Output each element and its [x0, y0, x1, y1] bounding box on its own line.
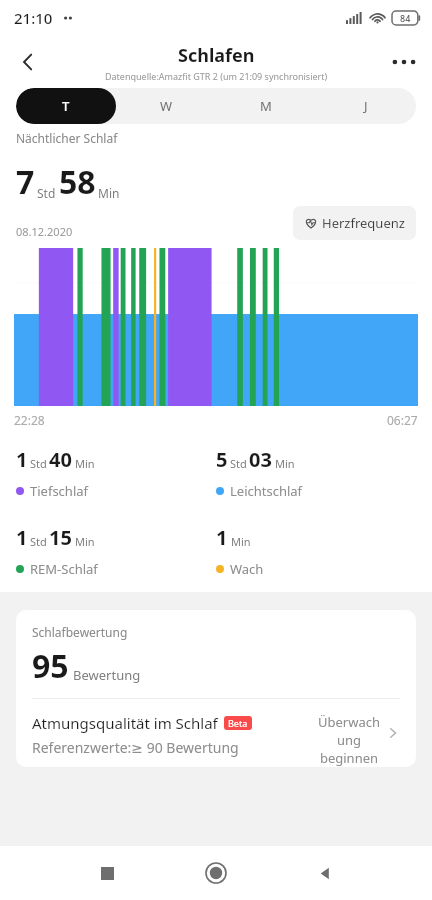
staticText: Atmungsqualität im Schlaf — [32, 713, 218, 733]
staticText: 40 — [49, 446, 72, 473]
staticText: 84 — [400, 12, 411, 24]
staticText: 58 — [59, 160, 96, 204]
staticText: Schlafen — [178, 43, 255, 68]
staticText: W — [160, 97, 173, 115]
staticText: Min — [275, 456, 295, 471]
button[interactable]: 1 — [16, 524, 216, 578]
staticText: Leichtschlaf — [230, 482, 303, 500]
staticText: Bewertung — [73, 666, 141, 684]
staticText: Min — [75, 534, 95, 549]
staticText: 95 — [32, 644, 69, 688]
staticText: T — [62, 97, 70, 115]
staticText: M — [260, 97, 272, 115]
staticText: Std — [30, 456, 47, 471]
staticText: Std — [230, 456, 247, 471]
button[interactable]: T — [16, 88, 116, 124]
button[interactable]: 5 — [216, 446, 416, 500]
staticText: Tiefschlaf — [30, 482, 89, 500]
staticText: 1 — [16, 446, 28, 473]
staticText: Beta — [228, 717, 248, 729]
staticText: Herzfrequenz — [322, 214, 405, 232]
staticText: 22:28 — [14, 412, 45, 428]
staticText: Min — [98, 185, 120, 201]
staticText: Schlafbewertung — [32, 624, 128, 640]
staticText: Wach — [230, 560, 264, 578]
staticText: Min — [231, 534, 251, 549]
staticText: Std — [37, 185, 56, 201]
staticText: 1 — [16, 524, 28, 551]
staticText: 21:10 — [14, 8, 53, 28]
staticText: J — [364, 97, 368, 115]
staticText: 5 — [216, 446, 228, 473]
button[interactable]: More options — [382, 40, 426, 84]
staticText: 1 — [216, 524, 228, 551]
button[interactable]: J — [316, 88, 416, 124]
button[interactable]: W — [116, 88, 216, 124]
button[interactable]: Back — [301, 849, 349, 897]
staticText: 08.12.2020 — [16, 224, 73, 239]
staticText: Datenquelle:Amazfit GTR 2 (um 21:09 sync… — [105, 70, 328, 82]
button[interactable]: 1 — [16, 446, 216, 500]
staticText: 03 — [249, 446, 272, 473]
button[interactable]: M — [216, 88, 316, 124]
staticText: Überwachung beginnen — [318, 713, 380, 767]
staticText: Referenzwerte:≥ 90 Bewertung — [32, 738, 239, 757]
button[interactable]: 1 — [216, 524, 416, 578]
staticText: 06:27 — [387, 412, 418, 428]
button[interactable]: Home — [192, 849, 240, 897]
staticText: 7 — [16, 160, 35, 204]
staticText: Std — [30, 534, 47, 549]
staticText: Nächtlicher Schlaf — [16, 130, 118, 146]
button[interactable]: Herzfrequenz — [293, 206, 416, 240]
staticText: REM-Schlaf — [30, 560, 98, 578]
button[interactable]: Atmungsqualität im Schlaf — [16, 699, 416, 767]
staticText: Min — [75, 456, 95, 471]
button[interactable]: Recent apps — [83, 849, 131, 897]
staticText: 15 — [49, 524, 72, 551]
button[interactable]: Back — [6, 40, 50, 84]
